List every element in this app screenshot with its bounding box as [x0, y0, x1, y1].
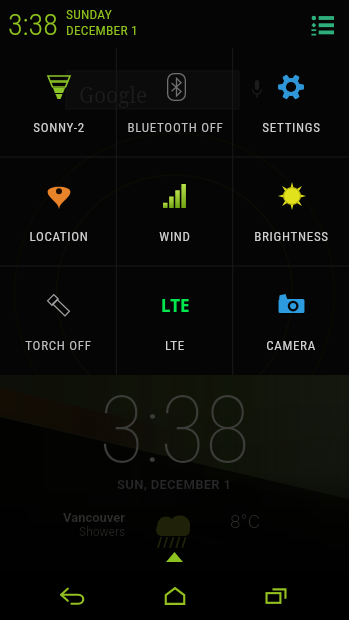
button[interactable]: WIND: [117, 157, 233, 266]
staticText: 3:38: [8, 7, 58, 42]
staticText: Google: [79, 81, 148, 110]
button[interactable]: SONNY-2: [0, 48, 117, 157]
staticText: Showers: [79, 525, 126, 539]
button[interactable]: Quick settings list: [307, 9, 337, 39]
staticText: TORCH OFF: [25, 338, 92, 353]
staticText: DECEMBER 1: [66, 22, 138, 38]
staticText: BRIGHTNESS: [254, 229, 329, 244]
staticText: LTE: [165, 338, 185, 353]
button[interactable]: Recent apps: [248, 572, 304, 620]
button[interactable]: Back: [45, 572, 101, 620]
staticText: Vancouver: [63, 510, 126, 525]
staticText: BLUETOOTH OFF: [127, 120, 224, 135]
staticText: SUNDAY: [66, 6, 112, 22]
button[interactable]: BRIGHTNESS: [233, 157, 349, 266]
button[interactable]: Home: [147, 572, 203, 620]
staticText: CAMERA: [266, 338, 316, 353]
staticText: LOCATION: [29, 229, 89, 244]
button[interactable]: LOCATION: [0, 157, 117, 266]
staticText: 3:38: [99, 376, 250, 485]
button[interactable]: CAMERA: [233, 266, 349, 375]
staticText: SONNY-2: [33, 120, 85, 135]
button[interactable]: TORCH OFF: [0, 266, 117, 375]
button[interactable]: BLUETOOTH OFF: [117, 48, 233, 157]
staticText: 8°C: [230, 510, 261, 532]
button[interactable]: SETTINGS: [233, 48, 349, 157]
staticText: SETTINGS: [262, 120, 321, 135]
button[interactable]: Expand quick settings: [0, 552, 349, 562]
button[interactable]: LTE: [117, 266, 233, 375]
staticText: LTE: [161, 294, 190, 317]
staticText: WIND: [159, 229, 191, 244]
staticText: SUN, DECEMBER 1: [117, 477, 232, 492]
